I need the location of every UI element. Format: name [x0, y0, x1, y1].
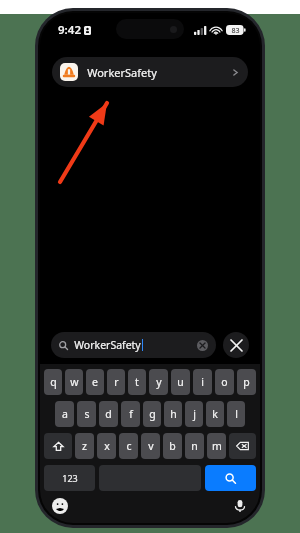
staticText: r [114, 375, 119, 389]
button[interactable]: v [141, 433, 160, 459]
button[interactable]: z [75, 433, 94, 459]
button[interactable]: p [237, 369, 256, 395]
button[interactable]: a [55, 401, 74, 427]
button[interactable]: w [65, 369, 83, 395]
staticText: c [126, 439, 132, 453]
staticText: g [149, 407, 156, 421]
staticText: k [212, 407, 218, 421]
button[interactable]: d [99, 401, 118, 427]
button[interactable]: h [164, 401, 182, 427]
staticText: WorkerSafety [74, 338, 141, 352]
button[interactable]: e [86, 369, 104, 395]
button[interactable]: b [163, 433, 182, 459]
button[interactable]: j [185, 401, 203, 427]
staticText: m [212, 439, 222, 453]
staticText: n [191, 439, 198, 453]
button[interactable]: s [77, 401, 96, 427]
button[interactable]: q [44, 369, 62, 395]
button[interactable]: k [206, 401, 224, 427]
button[interactable]: g [143, 401, 161, 427]
staticText: u [177, 375, 184, 389]
staticText: WorkerSafety [87, 65, 157, 80]
staticText: q [50, 375, 57, 389]
button[interactable]: WorkerSafety [51, 332, 216, 358]
button[interactable]: Voice input [232, 498, 248, 514]
staticText: p [243, 375, 250, 389]
staticText: a [62, 407, 68, 421]
button[interactable]: Shift [44, 433, 72, 459]
staticText: l [235, 407, 238, 421]
button[interactable]: i [193, 369, 212, 395]
staticText: j [193, 407, 196, 421]
staticText: s [84, 407, 90, 421]
staticText: 123 [62, 472, 78, 484]
staticText: h [170, 407, 177, 421]
button[interactable]: r [107, 369, 125, 395]
staticText: t [135, 375, 139, 389]
staticText: i [201, 375, 204, 389]
button[interactable]: t [128, 369, 146, 395]
button[interactable]: WorkerSafety [52, 57, 248, 87]
staticText: x [104, 439, 110, 453]
button[interactable]: Close search [223, 332, 249, 358]
button[interactable]: l [227, 401, 245, 427]
button[interactable]: Search [205, 465, 256, 491]
button[interactable]: f [121, 401, 140, 427]
button[interactable]: o [215, 369, 234, 395]
staticText: 83 [231, 25, 240, 35]
staticText: e [92, 375, 98, 389]
button[interactable]: u [171, 369, 190, 395]
staticText: b [169, 439, 176, 453]
button[interactable]: m [207, 433, 226, 459]
button[interactable]: Clear text [197, 340, 208, 351]
staticText: f [129, 407, 133, 421]
button[interactable]: Emoji [52, 498, 68, 514]
button[interactable]: 123 [44, 465, 95, 491]
button[interactable]: y [149, 369, 168, 395]
staticText: w [70, 375, 79, 389]
staticText: o [221, 375, 228, 389]
staticText: 9:42 [58, 22, 81, 38]
staticText: y [156, 375, 162, 389]
staticText: d [105, 407, 112, 421]
button[interactable]: x [97, 433, 116, 459]
staticText: z [82, 439, 87, 453]
button[interactable]: c [119, 433, 138, 459]
button[interactable]: n [185, 433, 204, 459]
button[interactable]: Backspace [229, 433, 256, 459]
staticText: v [148, 439, 154, 453]
